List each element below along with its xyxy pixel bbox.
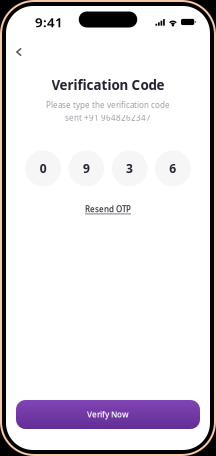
- staticText: Verification Code: [51, 76, 164, 94]
- staticText: 0: [40, 160, 47, 176]
- staticText: 9: [83, 160, 90, 176]
- button[interactable]: Back: [9, 42, 29, 62]
- button[interactable]: Verify Now: [16, 400, 200, 429]
- staticText: Resend OTP: [85, 204, 131, 215]
- staticText: sent +91 9648262347: [65, 112, 151, 123]
- button[interactable]: Resend OTP: [85, 204, 131, 214]
- staticText: 3: [126, 160, 133, 176]
- staticText: 9:41: [35, 13, 63, 31]
- staticText: 6: [169, 160, 176, 176]
- staticText: Please type the verification code: [46, 100, 170, 110]
- staticText: Verify Now: [87, 409, 129, 420]
